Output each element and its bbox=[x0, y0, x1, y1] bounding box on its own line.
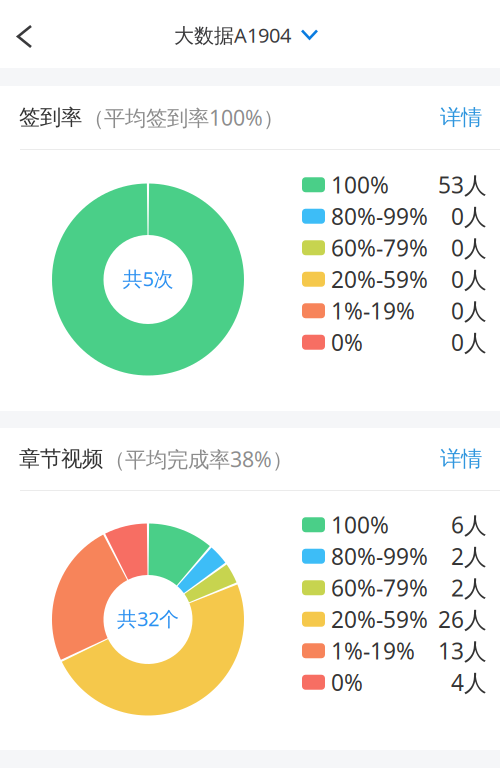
staticText: 共32个 bbox=[117, 605, 179, 632]
staticText: 0人 bbox=[451, 296, 487, 326]
staticText: 4人 bbox=[451, 667, 487, 697]
staticText: （平均完成率38%） bbox=[104, 445, 293, 473]
staticText: 签到率 bbox=[19, 104, 82, 131]
button[interactable]: Back bbox=[0, 0, 50, 68]
staticText: 大数据A1904 bbox=[174, 22, 291, 48]
staticText: 100% bbox=[331, 510, 389, 540]
staticText: 26人 bbox=[438, 604, 487, 634]
staticText: 20%-59% bbox=[331, 604, 428, 634]
staticText: 0% bbox=[331, 327, 363, 357]
staticText: 20%-59% bbox=[331, 264, 428, 294]
staticText: 0人 bbox=[451, 233, 487, 263]
staticText: 详情 bbox=[440, 104, 482, 131]
staticText: 100% bbox=[331, 170, 389, 200]
staticText: 80%-99% bbox=[331, 541, 428, 571]
staticText: 13人 bbox=[438, 636, 487, 666]
staticText: 0人 bbox=[451, 327, 487, 357]
staticText: 章节视频 bbox=[19, 446, 103, 472]
staticText: 60%-79% bbox=[331, 573, 428, 603]
staticText: 详情 bbox=[440, 446, 482, 472]
staticText: 60%-79% bbox=[331, 233, 428, 263]
staticText: 0% bbox=[331, 667, 363, 697]
button[interactable]: Switch class bbox=[291, 20, 320, 49]
staticText: 6人 bbox=[451, 510, 487, 540]
staticText: 2人 bbox=[451, 573, 487, 603]
staticText: 2人 bbox=[451, 541, 487, 571]
button[interactable]: 详情 bbox=[426, 432, 482, 486]
staticText: 53人 bbox=[438, 170, 487, 200]
staticText: 1%-19% bbox=[331, 296, 415, 326]
staticText: （平均签到率100%） bbox=[83, 103, 284, 132]
button[interactable]: 详情 bbox=[426, 90, 482, 145]
staticText: 0人 bbox=[451, 264, 487, 294]
staticText: 1%-19% bbox=[331, 636, 415, 666]
staticText: 0人 bbox=[451, 201, 487, 231]
staticText: 共5次 bbox=[122, 265, 173, 292]
staticText: 80%-99% bbox=[331, 201, 428, 231]
